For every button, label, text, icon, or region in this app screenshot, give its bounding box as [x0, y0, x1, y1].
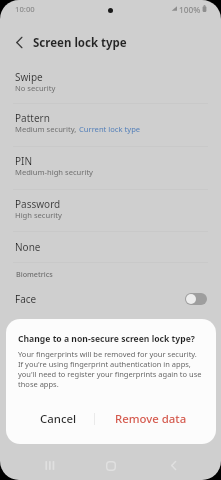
button[interactable]: Recents: [32, 453, 68, 478]
button[interactable]: Swipe: [0, 62, 221, 103]
staticText: Current lock type: [79, 124, 141, 134]
staticText: None: [15, 240, 41, 254]
staticText: Screen lock type: [33, 35, 127, 51]
staticText: Swipe: [15, 70, 43, 84]
staticText: Face: [15, 292, 37, 306]
staticText: 100%: [179, 4, 201, 15]
staticText: No security: [15, 83, 56, 93]
button[interactable]: Pattern: [0, 103, 221, 146]
button[interactable]: Home: [93, 453, 129, 478]
staticText: Cancel: [40, 411, 77, 427]
staticText: Your fingerprints will be removed for yo…: [18, 349, 202, 389]
staticText: High security: [15, 210, 62, 220]
button[interactable]: PIN: [0, 146, 221, 189]
button[interactable]: Back: [6, 28, 32, 56]
staticText: 10:00: [15, 4, 35, 14]
staticText: PIN: [15, 154, 33, 168]
staticText: Password: [15, 197, 61, 211]
button[interactable]: Face: [0, 286, 221, 312]
staticText: Pattern: [15, 111, 50, 125]
staticText: Medium-high security: [15, 167, 93, 177]
button[interactable]: Cancel: [14, 406, 102, 432]
button[interactable]: Remove data: [95, 406, 206, 432]
button[interactable]: Password: [0, 189, 221, 231]
staticText: Change to a non-secure screen lock type?: [18, 333, 195, 345]
staticText: Biometrics: [16, 269, 53, 279]
staticText: Medium security,: [15, 124, 79, 134]
button[interactable]: None: [0, 231, 221, 263]
staticText: Remove data: [115, 411, 187, 427]
